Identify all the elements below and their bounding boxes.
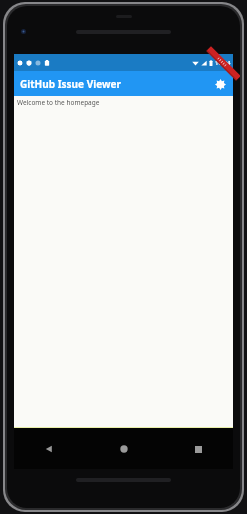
staticText: 10:54 — [215, 59, 231, 67]
staticText: GitHub Issue Viewer — [20, 77, 121, 91]
button[interactable]: Recent apps — [185, 436, 211, 462]
button[interactable]: Home — [111, 436, 137, 462]
button[interactable]: Settings — [209, 73, 231, 95]
button[interactable]: Back — [36, 436, 62, 462]
staticText: Welcome to the homepage — [17, 98, 100, 107]
